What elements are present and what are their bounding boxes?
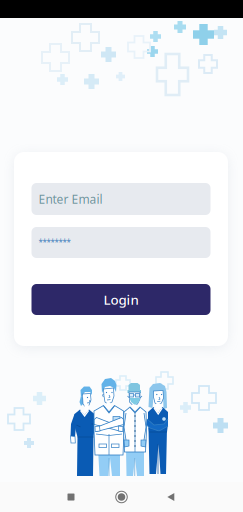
button[interactable]: Home (101, 482, 141, 512)
button[interactable]: Login (31, 284, 210, 315)
button[interactable]: Back (151, 482, 191, 512)
staticText: Enter Email (38, 191, 102, 207)
staticText: Login (103, 291, 138, 308)
button[interactable]: ******** (31, 227, 210, 258)
button[interactable]: Recents (51, 482, 91, 512)
button[interactable]: Enter Email (31, 183, 210, 215)
staticText: ******** (38, 237, 70, 248)
